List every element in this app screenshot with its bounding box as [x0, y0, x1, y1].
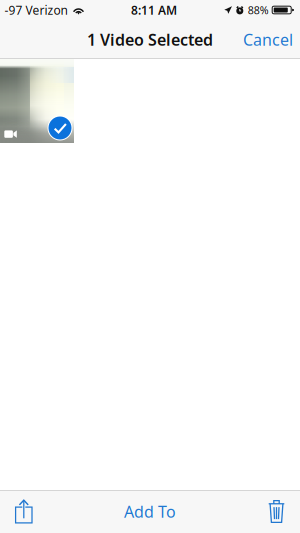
staticText: 88% [248, 3, 269, 17]
staticText: 1 Video Selected [87, 29, 213, 50]
button[interactable]: Share [0, 490, 46, 532]
button[interactable]: Selected video [0, 59, 74, 143]
staticText: -97 Verizon [4, 2, 67, 18]
button[interactable]: Add To [110, 491, 190, 532]
button[interactable]: Cancel [231, 20, 300, 59]
staticText: 8:11 AM [131, 2, 177, 18]
staticText: Add To [124, 501, 176, 522]
button[interactable]: Delete [255, 491, 300, 532]
staticText: Cancel [243, 29, 293, 50]
